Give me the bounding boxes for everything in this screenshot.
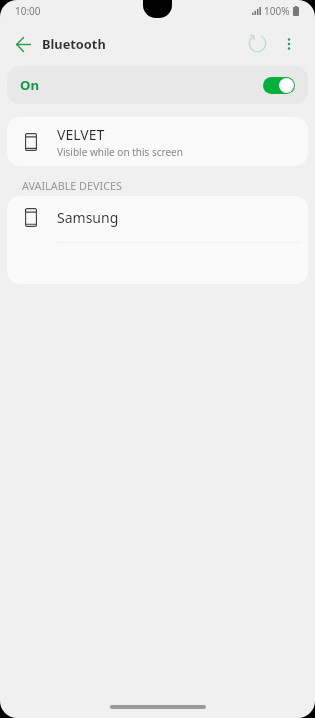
staticText: Samsung bbox=[57, 208, 119, 227]
staticText: 10:00 bbox=[15, 4, 41, 18]
button[interactable]: Refresh bbox=[242, 28, 272, 58]
button[interactable]: Samsung bbox=[7, 196, 308, 239]
button[interactable]: More options bbox=[274, 29, 304, 59]
button[interactable]: VELVET bbox=[7, 117, 308, 166]
staticText: VELVET bbox=[57, 125, 105, 144]
button[interactable]: Back bbox=[8, 29, 38, 59]
button[interactable]: On bbox=[7, 66, 308, 104]
staticText: Visible while on this screen bbox=[57, 145, 183, 159]
staticText: 100% bbox=[264, 4, 290, 18]
staticText: AVAILABLE DEVICES bbox=[22, 178, 122, 193]
staticText: Bluetooth bbox=[42, 35, 106, 52]
staticText: On bbox=[20, 76, 40, 94]
